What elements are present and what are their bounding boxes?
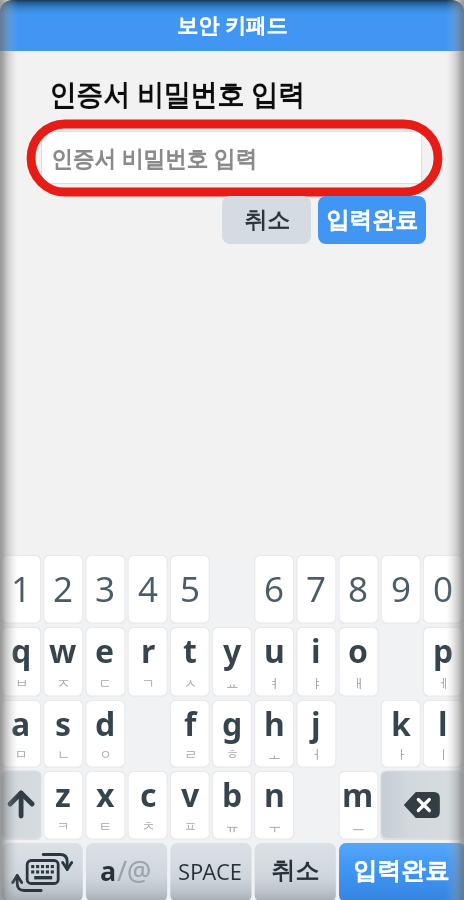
staticText: 1 (11, 565, 32, 613)
staticText: 0 (433, 565, 454, 613)
staticText: z (55, 773, 71, 817)
button[interactable]: 1 (0, 553, 42, 625)
staticText: ㄹ (184, 746, 197, 762)
button[interactable]: m (337, 769, 379, 841)
staticText: l (438, 702, 448, 746)
staticText: ㅏ (395, 746, 408, 762)
staticText: /@ (117, 852, 152, 889)
button[interactable]: i (295, 625, 337, 698)
button[interactable]: n (253, 769, 295, 841)
staticText: 인증서 비밀번호 입력 (49, 74, 305, 114)
staticText: q (11, 629, 32, 673)
staticText: m (342, 773, 374, 817)
staticText: 3 (95, 565, 116, 613)
staticText: a (11, 702, 31, 746)
button[interactable]: 2 (42, 553, 84, 625)
staticText: u (264, 629, 285, 673)
staticText: 취소 (271, 856, 319, 886)
staticText: ㅗ (268, 746, 281, 762)
button[interactable]: s (42, 698, 84, 769)
staticText: 보안 키패드 (177, 11, 288, 40)
button[interactable]: e (84, 625, 126, 698)
staticText: n (264, 773, 285, 817)
button[interactable]: j (295, 698, 337, 769)
staticText: ㅂ (15, 675, 28, 691)
button[interactable]: 인증서 비밀번호 입력 (42, 132, 421, 183)
button[interactable]: 입력완료 (318, 196, 426, 244)
button[interactable]: b (211, 769, 253, 841)
button[interactable]: q (0, 625, 42, 698)
button[interactable]: f (169, 698, 211, 769)
staticText: r (141, 629, 156, 673)
button[interactable]: 6 (253, 553, 295, 625)
button[interactable]: 5 (169, 553, 211, 625)
staticText: ㅕ (268, 675, 281, 691)
button[interactable]: o (337, 625, 379, 698)
staticText: ㄱ (142, 675, 155, 691)
button[interactable]: t (169, 625, 211, 698)
staticText: ㅔ (437, 675, 450, 691)
staticText: ㅜ (268, 818, 281, 834)
staticText: ㅐ (352, 675, 365, 691)
staticText: 취소 (244, 206, 290, 235)
button[interactable]: p (422, 625, 464, 698)
staticText: w (49, 629, 77, 673)
staticText: i (311, 629, 321, 673)
button[interactable]: Backspace (380, 769, 464, 841)
staticText: e (95, 629, 115, 673)
staticText: p (433, 629, 454, 673)
button[interactable]: 4 (127, 553, 169, 625)
button[interactable]: d (84, 698, 126, 769)
button[interactable]: x (84, 769, 126, 841)
button[interactable]: v (169, 769, 211, 841)
button[interactable]: y (211, 625, 253, 698)
button[interactable]: h (253, 698, 295, 769)
staticText: y (223, 629, 242, 673)
button[interactable]: 입력완료 (337, 841, 464, 900)
staticText: j (311, 702, 321, 746)
staticText: 6 (264, 565, 285, 613)
staticText: ㅡ (352, 818, 365, 834)
staticText: ㅎ (226, 746, 239, 762)
button[interactable]: 취소 (222, 196, 311, 244)
button[interactable]: Shift (0, 769, 42, 841)
button[interactable]: r (127, 625, 169, 698)
staticText: 입력완료 (326, 206, 418, 235)
button[interactable]: u (253, 625, 295, 698)
button[interactable]: 취소 (253, 841, 337, 900)
button[interactable]: 3 (84, 553, 126, 625)
button[interactable]: SPACE (168, 841, 253, 900)
staticText: ㅠ (226, 818, 239, 834)
button[interactable]: 9 (380, 553, 422, 625)
staticText: 2 (53, 565, 74, 613)
staticText: SPACE (178, 856, 243, 886)
staticText: 7 (306, 565, 327, 613)
button[interactable]: Change keyboard (0, 841, 84, 900)
button[interactable]: a (0, 698, 42, 769)
staticText: 입력완료 (353, 856, 449, 886)
staticText: c (140, 773, 157, 817)
staticText: s (55, 702, 72, 746)
staticText: 4 (138, 565, 159, 613)
button[interactable]: l (422, 698, 464, 769)
button[interactable]: z (42, 769, 84, 841)
staticText: t (183, 629, 197, 673)
button[interactable]: g (211, 698, 253, 769)
staticText: k (391, 702, 411, 746)
staticText: 5 (180, 565, 201, 613)
staticText: ㅌ (99, 818, 112, 834)
button[interactable]: w (42, 625, 84, 698)
button[interactable]: 7 (295, 553, 337, 625)
button[interactable]: k (380, 698, 422, 769)
button[interactable]: 8 (337, 553, 379, 625)
staticText: x (96, 773, 115, 817)
button[interactable]: c (127, 769, 169, 841)
button[interactable]: 0 (422, 553, 464, 625)
staticText: ㅍ (184, 818, 197, 834)
button[interactable]: a (84, 841, 168, 900)
staticText: 인증서 비밀번호 입력 (51, 142, 257, 173)
staticText: b (222, 773, 243, 817)
staticText: ㅋ (57, 818, 70, 834)
staticText: ㅑ (310, 675, 323, 691)
staticText: a (100, 852, 117, 889)
